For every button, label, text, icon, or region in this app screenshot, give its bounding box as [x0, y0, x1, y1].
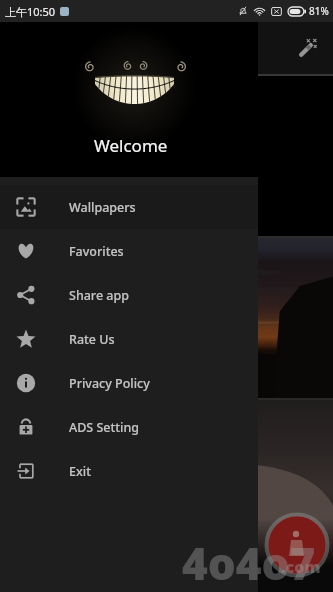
button[interactable]: Wallpapers: [0, 185, 258, 229]
button[interactable]: ADS Setting: [0, 405, 258, 449]
staticText: Rate Us: [69, 331, 115, 348]
staticText: 4o4o7: [182, 533, 316, 592]
staticText: .com: [281, 556, 321, 578]
staticText: Exit: [69, 463, 91, 480]
button[interactable]: Rate Us: [0, 317, 258, 361]
staticText: 上午10:50: [5, 4, 56, 19]
button[interactable]: Exit: [0, 449, 258, 493]
button[interactable]: Share app: [0, 273, 258, 317]
staticText: 81%: [309, 4, 329, 18]
staticText: Wallpapers: [69, 199, 136, 216]
staticText: Share app: [69, 287, 129, 304]
button[interactable]: Magic wand: [298, 38, 318, 58]
staticText: Privacy Policy: [69, 375, 150, 392]
staticText: Welcome: [94, 134, 168, 157]
staticText: ADS Setting: [69, 419, 140, 436]
button[interactable]: Favorites: [0, 229, 258, 273]
button[interactable]: Privacy Policy: [0, 361, 258, 405]
staticText: Favorites: [69, 243, 124, 260]
